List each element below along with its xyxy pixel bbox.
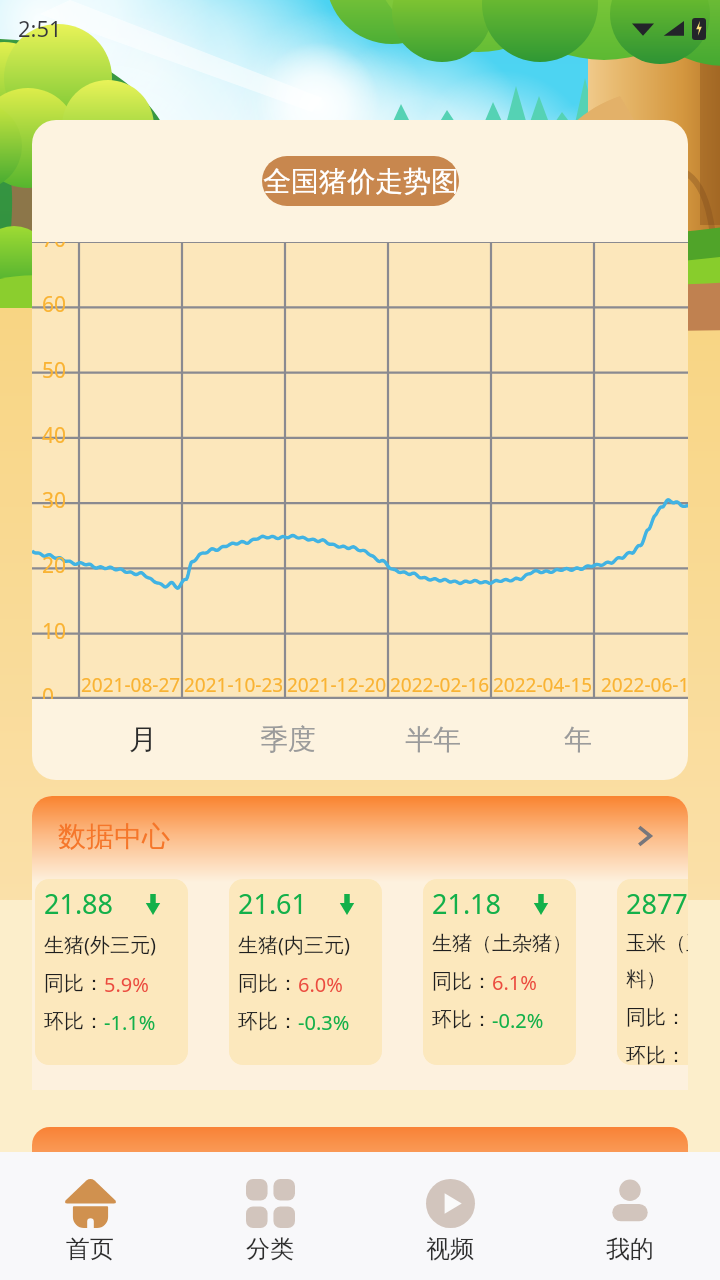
staticText: 2021-10-23 <box>184 672 284 698</box>
staticText: 视频 <box>426 1234 474 1264</box>
staticText: 6.0% <box>298 971 343 998</box>
staticText: 环比： <box>626 1043 686 1065</box>
staticText: 0 <box>42 682 55 699</box>
button[interactable] <box>32 1127 688 1167</box>
staticText: 2021-08-27 <box>81 672 181 698</box>
button[interactable]: 21.61 <box>229 879 382 1065</box>
button[interactable]: 21.18 <box>423 879 576 1065</box>
staticText: 30 <box>42 486 67 515</box>
staticText: 数据中心 <box>58 819 170 854</box>
staticText: 70 <box>42 242 67 254</box>
button[interactable]: 视频 <box>360 1152 540 1280</box>
staticText: 同比： <box>44 971 104 996</box>
staticText: 同比： <box>432 969 492 994</box>
button[interactable]: 我的 <box>540 1152 720 1280</box>
staticText: 同比： <box>238 971 298 996</box>
staticText: -1.1% <box>104 1009 156 1036</box>
staticText: 生猪(外三元) <box>44 931 156 958</box>
staticText: 环比： <box>238 1009 298 1034</box>
button[interactable]: 月 <box>70 699 215 780</box>
button[interactable]: 半年 <box>360 699 505 780</box>
staticText: 季度 <box>260 722 316 757</box>
other: More data <box>632 824 656 848</box>
button[interactable]: 首页 <box>0 1152 180 1280</box>
staticText: 21.18 <box>432 885 502 922</box>
staticText: -0.3% <box>298 1009 350 1036</box>
staticText: 月 <box>129 722 157 757</box>
staticText: -0.2% <box>492 1007 544 1034</box>
staticText: 全国猪价走势图 <box>263 164 459 199</box>
staticText: 同比： <box>626 1005 686 1030</box>
staticText: 半年 <box>405 722 461 757</box>
staticText: 28770 <box>626 885 688 922</box>
button[interactable]: 28770 <box>617 879 688 1065</box>
staticText: 2022-04-15 <box>493 672 593 698</box>
staticText: 2022-02-16 <box>390 672 490 698</box>
staticText: 40 <box>42 421 67 450</box>
staticText: 21.61 <box>238 885 308 922</box>
staticText: 60 <box>42 290 67 319</box>
button[interactable]: 季度 <box>215 699 360 780</box>
button[interactable]: 21.88 <box>35 879 188 1065</box>
staticText: 10 <box>42 617 67 646</box>
button[interactable]: 数据中心 <box>32 796 688 882</box>
staticText: 6.1% <box>492 969 537 996</box>
staticText: 20 <box>42 551 67 580</box>
staticText: 环比： <box>432 1007 492 1032</box>
staticText: 年 <box>564 722 592 757</box>
staticText: 环比： <box>44 1009 104 1034</box>
button[interactable]: 分类 <box>180 1152 360 1280</box>
staticText: 生猪（土杂猪） <box>432 931 572 956</box>
staticText: 5.9% <box>104 971 149 998</box>
staticText: 2021-12-20 <box>287 672 387 698</box>
staticText: 我的 <box>606 1234 654 1264</box>
staticText: 2022-06-1 <box>601 672 688 698</box>
staticText: 分类 <box>246 1234 294 1264</box>
staticText: 生猪(内三元) <box>238 931 350 958</box>
staticText: 21.88 <box>44 885 114 922</box>
staticText: 50 <box>42 356 67 385</box>
button[interactable]: 年 <box>505 699 650 780</box>
staticText: 2:51 <box>18 13 62 43</box>
staticText: 首页 <box>66 1234 114 1264</box>
staticText: 玉米（玉米饲料） <box>626 931 688 992</box>
